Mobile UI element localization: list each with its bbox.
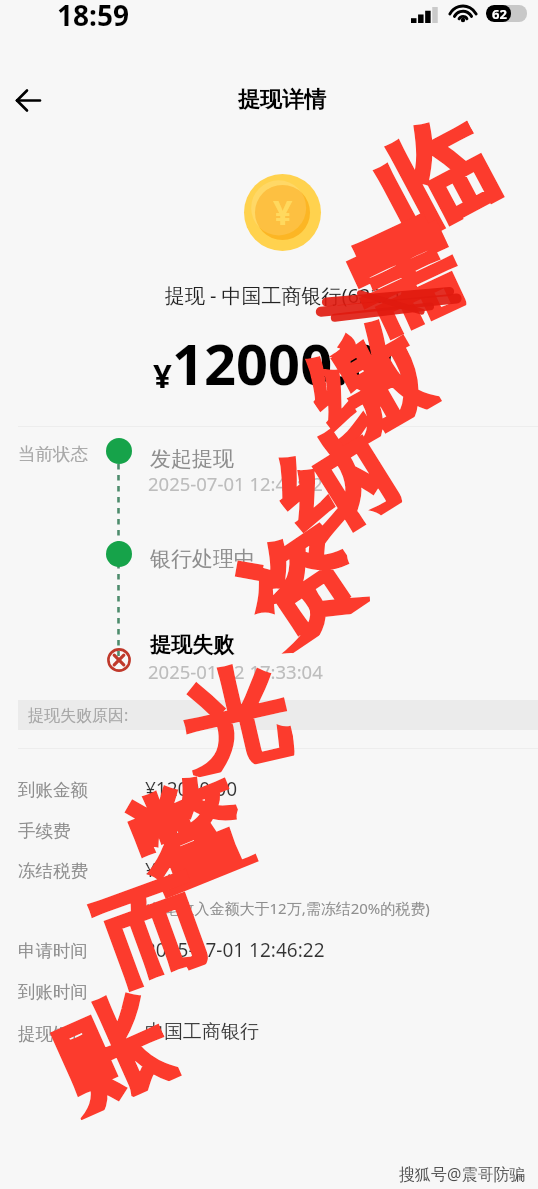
staticText: 到账金额 [18, 779, 88, 801]
staticText: 银行处理中 [150, 546, 255, 572]
staticText: 账 [34, 970, 182, 1120]
staticText: ¥ [153, 353, 172, 398]
staticText: 提现失败 [150, 632, 234, 658]
staticText: 而 [81, 854, 219, 996]
staticText: 缴 [286, 299, 442, 457]
staticText: 12000.00 [172, 325, 412, 401]
staticText: 2025-01-02 17:33:04 [148, 659, 323, 684]
staticText: 鳖 [113, 754, 259, 902]
staticText: 中国工商银行 [145, 1020, 259, 1044]
button[interactable]: Back [4, 76, 52, 124]
staticText: ¥0.00 [145, 857, 194, 883]
staticText: 当前状态 [18, 443, 88, 465]
staticText: 2025-07-01 12:46:22 [148, 471, 323, 496]
staticText: 手续费 [18, 820, 71, 842]
staticText: 提现失败原因: [28, 704, 129, 726]
staticText: ¥ [273, 189, 293, 235]
staticText: 资 [217, 500, 375, 660]
staticText: 光 [169, 645, 297, 778]
staticText: 62 [492, 5, 507, 22]
staticText: 临 [353, 92, 507, 248]
staticText: 发起提现 [150, 446, 234, 472]
staticText: 提现详情 [13, 86, 538, 114]
staticText: ¥24.00 [145, 817, 205, 843]
staticText: 需 [326, 196, 474, 348]
staticText: 纳 [254, 403, 406, 557]
staticText: (单笔收入金额大于12万,需冻结20%的税费) [145, 898, 430, 918]
staticText: 2025-07-01 12:46:22 [145, 937, 325, 963]
staticText: 申请时间 [18, 940, 88, 962]
staticText: 到账时间 [18, 981, 88, 1003]
staticText: 冻结税费 [18, 860, 88, 882]
staticText: 提现 - 中国工商银行(6222) [13, 282, 538, 309]
staticText: 提现银行 [18, 1023, 88, 1045]
staticText: ¥12000.00 [145, 776, 238, 802]
staticText: 搜狐号@震哥防骗 [399, 1163, 526, 1185]
staticText: 18:59 [57, 0, 129, 34]
